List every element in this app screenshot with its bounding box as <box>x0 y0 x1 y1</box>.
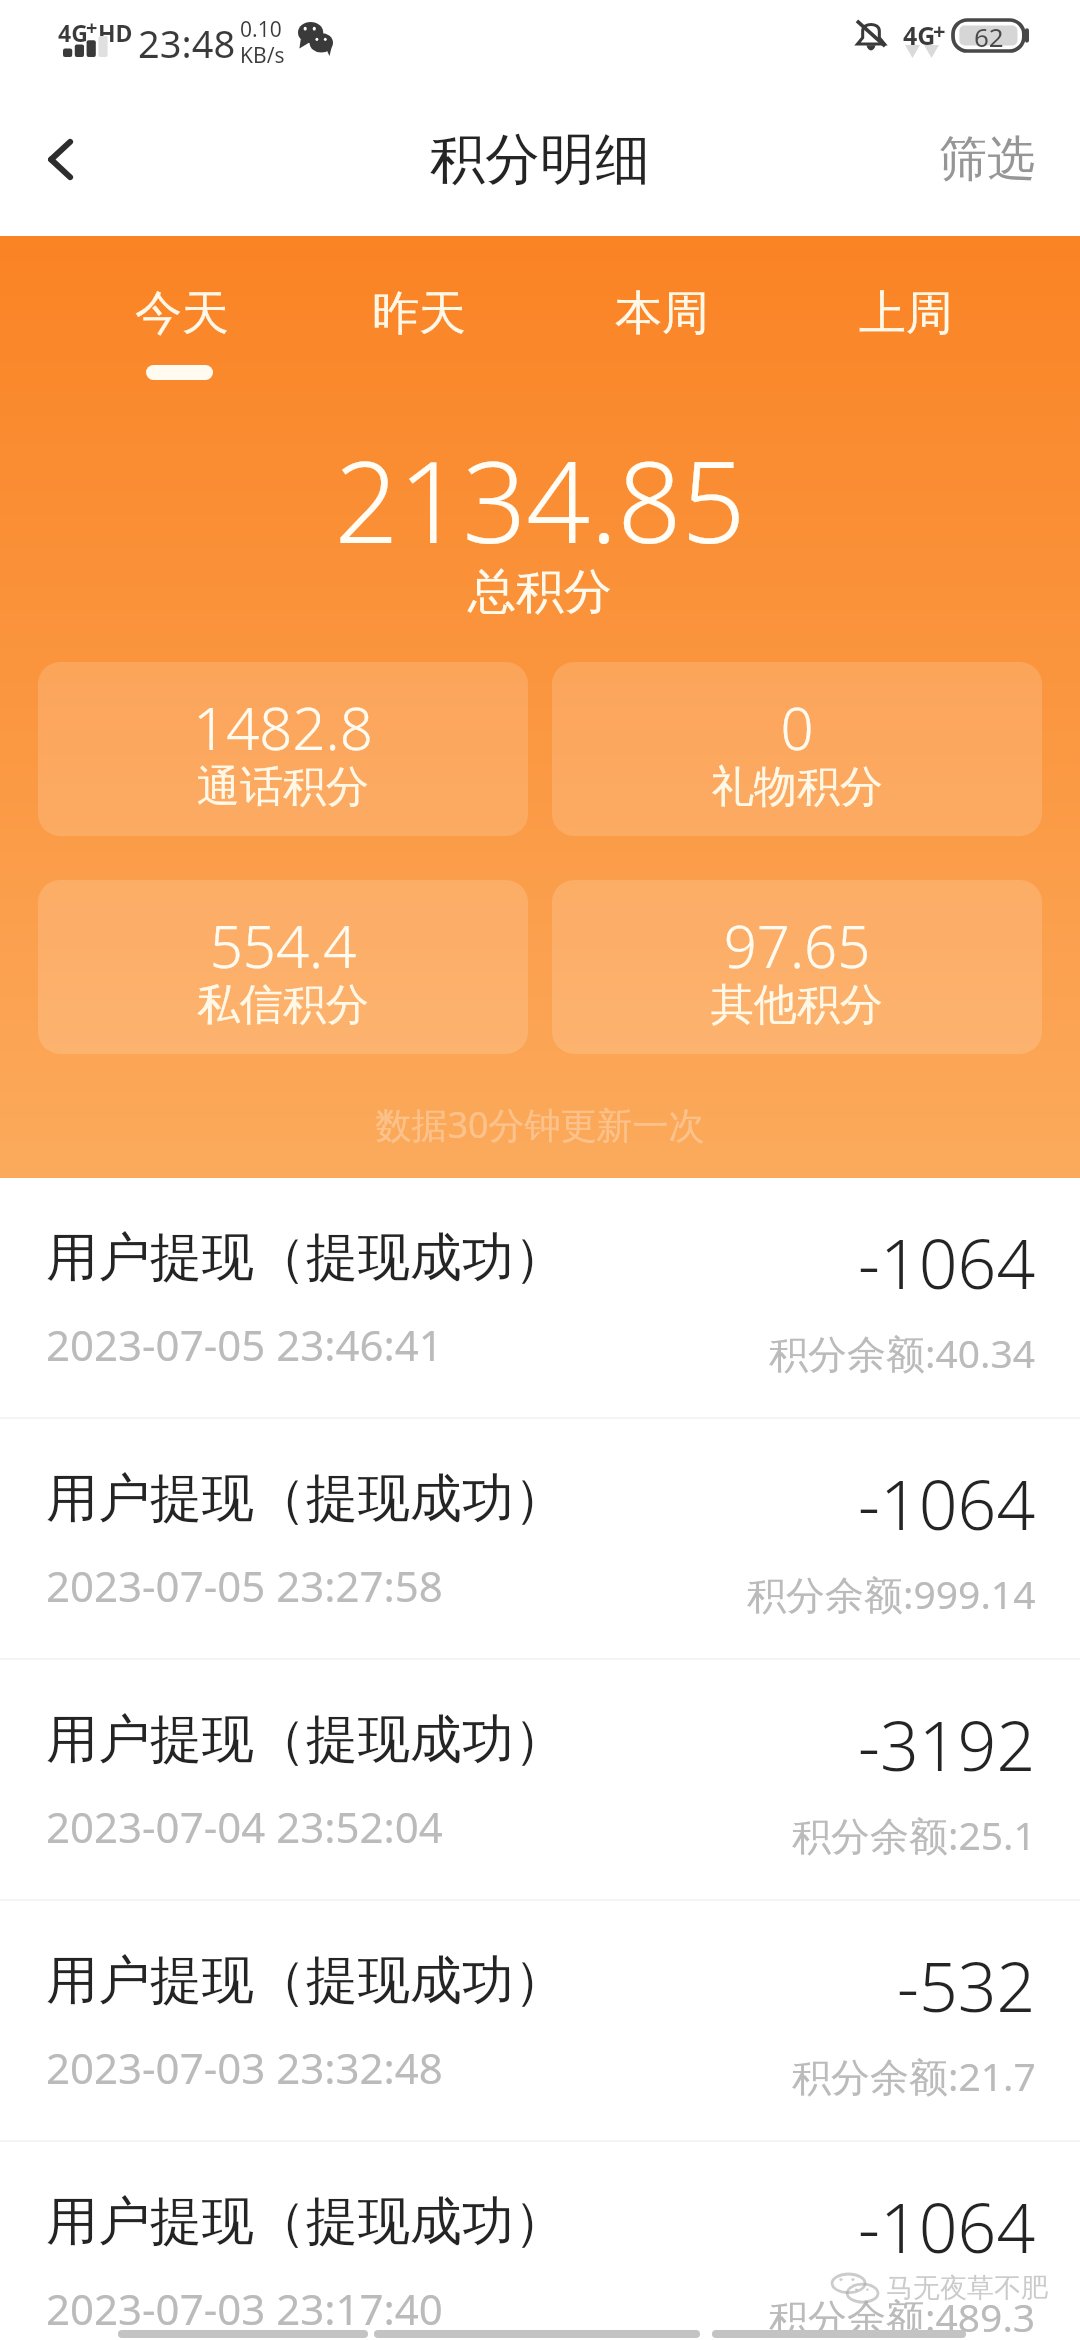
staticText: 积分余额:40.34 <box>769 1326 1036 1379</box>
button[interactable]: 1482.8 <box>38 662 528 836</box>
staticText: 用户提现（提现成功） <box>46 1466 566 1532</box>
staticText: 筛选 <box>939 129 1035 189</box>
button[interactable]: 0 <box>552 662 1042 836</box>
staticText: -1064 <box>858 1216 1036 1309</box>
staticText: 2023-07-05 23:27:58 <box>46 1557 443 1614</box>
staticText: 1482.8 <box>38 688 528 767</box>
staticText: 用户提现（提现成功） <box>46 1707 566 1773</box>
staticText: 积分明细 <box>430 125 650 194</box>
button[interactable]: 本周 <box>610 270 714 384</box>
button[interactable]: 今天 <box>130 270 234 384</box>
button[interactable]: 用户提现（提现成功） <box>0 1178 1080 1419</box>
staticText: 数据30分钟更新一次 <box>0 1100 1080 1149</box>
staticText: 2023-07-05 23:46:41 <box>46 1316 443 1373</box>
staticText: 积分余额:21.7 <box>792 2049 1036 2102</box>
staticText: 2023-07-04 23:52:04 <box>46 1798 443 1855</box>
staticText: -3192 <box>858 1698 1036 1791</box>
staticText: 0 <box>552 688 1042 767</box>
staticText: 今天 <box>135 284 229 343</box>
staticText: -1064 <box>858 2180 1036 2273</box>
staticText: 马无夜草不肥 <box>886 2271 1048 2305</box>
staticText: HD <box>98 17 133 48</box>
staticText: 2023-07-03 23:17:40 <box>46 2280 443 2337</box>
staticText: -532 <box>897 1939 1036 2032</box>
staticText: 2023-07-03 23:32:48 <box>46 2039 443 2096</box>
staticText: 97.65 <box>552 906 1042 985</box>
button[interactable]: 昨天 <box>367 270 471 384</box>
button[interactable]: 97.65 <box>552 880 1042 1054</box>
staticText: 0.10 <box>240 15 282 44</box>
staticText: 62 <box>974 19 1004 50</box>
staticText: 积分余额:999.14 <box>747 1567 1036 1620</box>
staticText: 用户提现（提现成功） <box>46 1225 566 1291</box>
staticText: 积分余额:489.3 <box>769 2290 1036 2340</box>
staticText: + <box>86 14 98 41</box>
staticText: 积分余额:25.1 <box>792 1808 1036 1861</box>
button[interactable]: 用户提现（提现成功） <box>0 1419 1080 1660</box>
staticText: 本周 <box>615 284 709 343</box>
staticText: -1064 <box>858 1457 1036 1550</box>
staticText: 礼物积分 <box>552 760 1042 814</box>
button[interactable]: 上周 <box>854 270 958 384</box>
staticText: 2134.85 <box>0 423 1080 576</box>
staticText: 23:48 <box>138 17 236 69</box>
button[interactable]: 筛选 <box>907 109 1080 227</box>
staticText: 通话积分 <box>38 760 528 814</box>
staticText: 其他积分 <box>552 978 1042 1032</box>
staticText: 私信积分 <box>38 978 528 1032</box>
button[interactable]: 用户提现（提现成功） <box>0 2142 1080 2340</box>
staticText: 4G <box>903 18 936 52</box>
button[interactable]: 用户提现（提现成功） <box>0 1660 1080 1901</box>
staticText: KB/s <box>240 41 285 70</box>
staticText: 昨天 <box>372 284 466 343</box>
staticText: 用户提现（提现成功） <box>46 2189 566 2255</box>
staticText: 总积分 <box>0 562 1080 622</box>
button[interactable]: 用户提现（提现成功） <box>0 1901 1080 2142</box>
button[interactable]: 554.4 <box>38 880 528 1054</box>
staticText: 554.4 <box>38 906 528 985</box>
staticText: 上周 <box>859 284 953 343</box>
staticText: + <box>933 15 946 45</box>
staticText: 4G <box>58 17 88 48</box>
staticText: 用户提现（提现成功） <box>46 1948 566 2014</box>
button[interactable]: Back <box>0 100 122 236</box>
